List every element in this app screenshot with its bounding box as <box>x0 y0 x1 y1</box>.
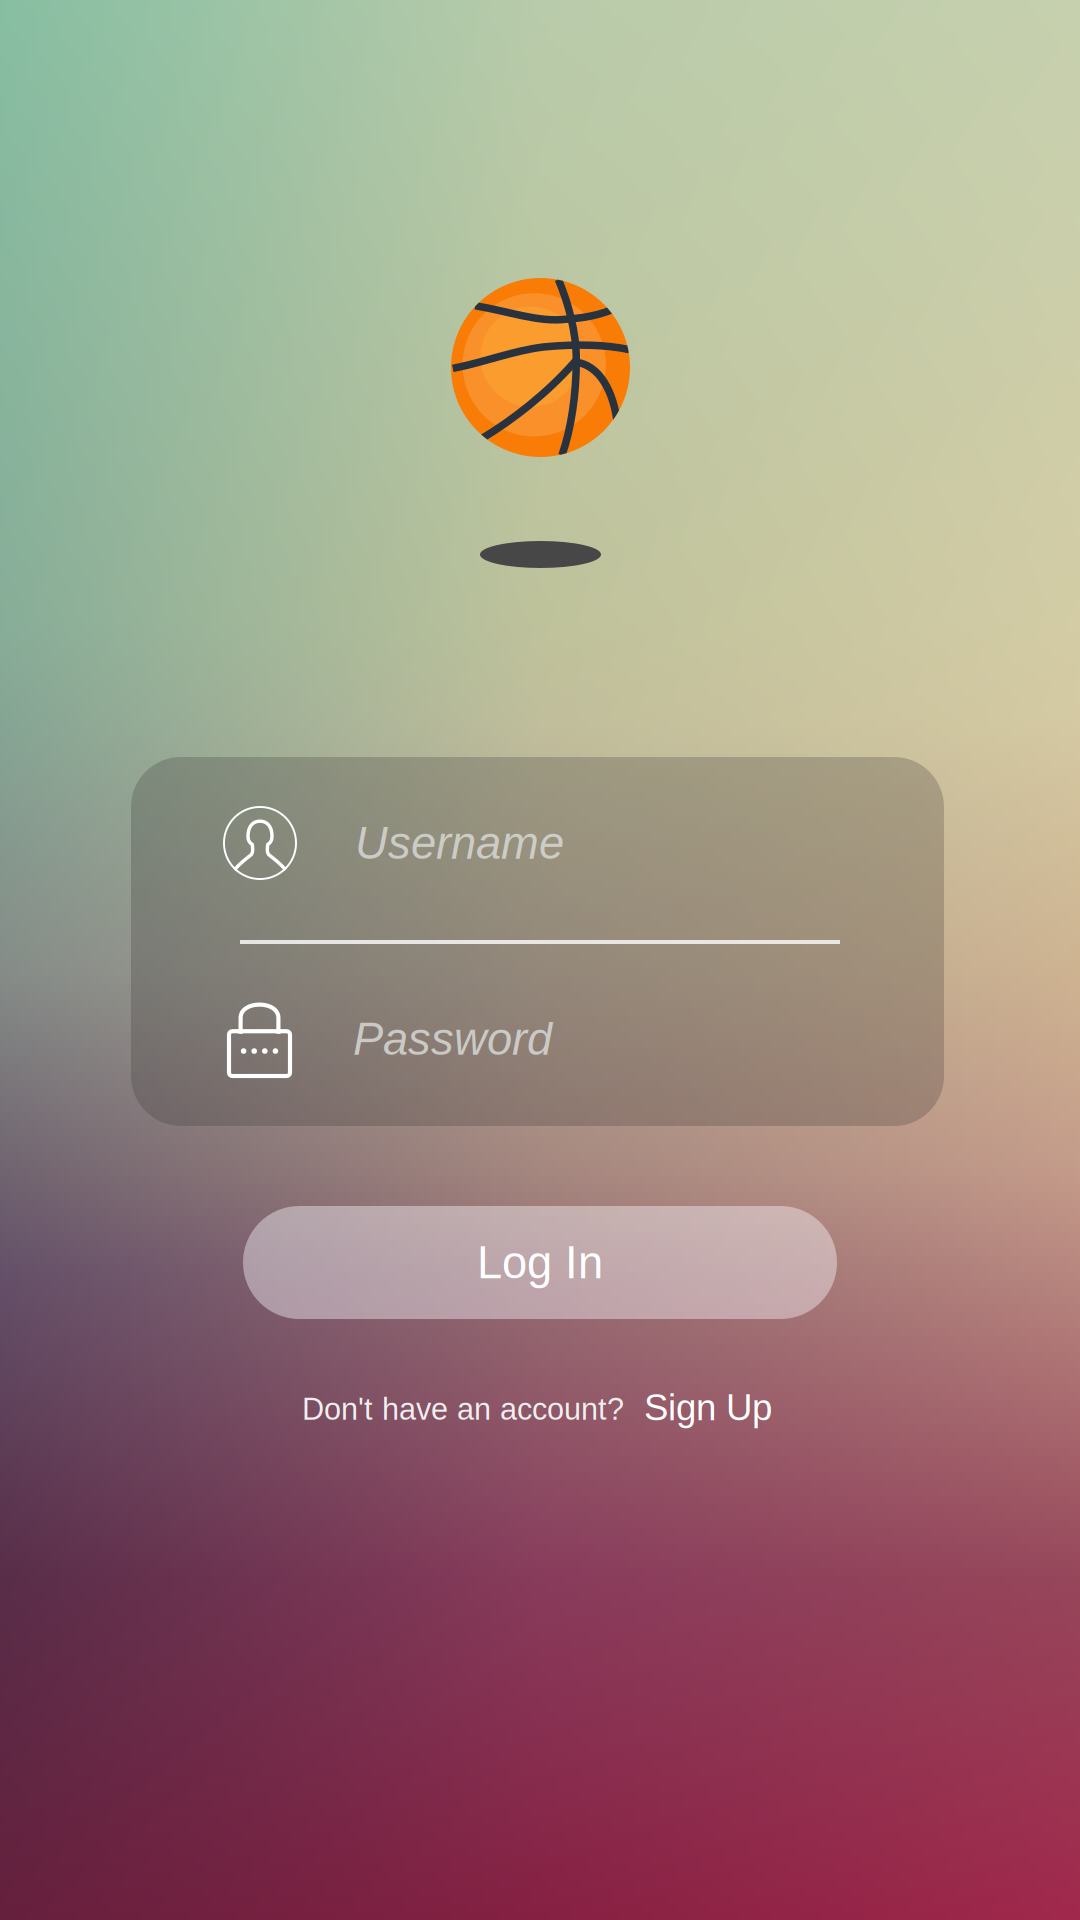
staticText: Username <box>355 818 564 868</box>
button[interactable]: Sign Up <box>644 1387 772 1428</box>
staticText: Password <box>353 1014 552 1064</box>
staticText: Sign Up <box>644 1387 772 1428</box>
button[interactable]: Log In <box>243 1206 837 1319</box>
button[interactable]: Username <box>355 783 901 903</box>
staticText: Log In <box>477 1237 603 1288</box>
button[interactable]: Password <box>353 979 899 1099</box>
staticText: Don't have an account? <box>302 1392 624 1426</box>
